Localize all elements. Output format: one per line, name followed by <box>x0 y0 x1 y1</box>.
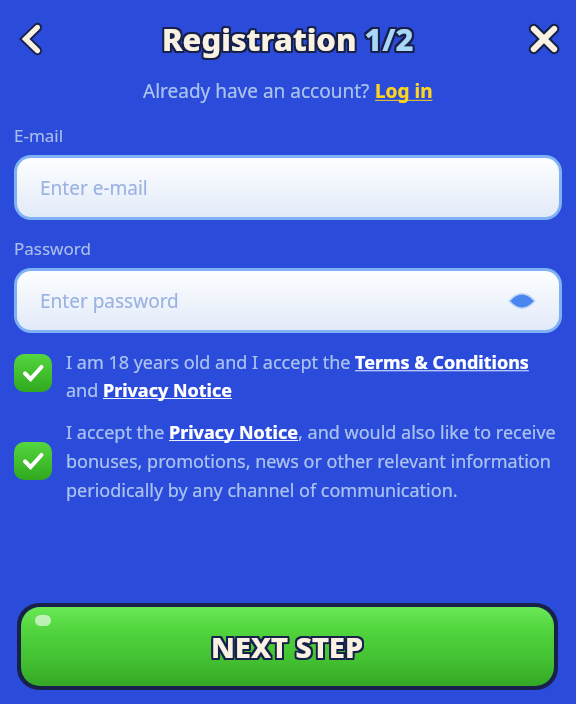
button[interactable]: Checkbox, checked <box>14 442 52 480</box>
staticText: NEXT STEP <box>211 625 364 664</box>
staticText: NEXT STEP <box>210 625 363 664</box>
staticText: Registration 1/2 <box>162 18 414 60</box>
staticText: NEXT STEP <box>209 627 362 666</box>
button[interactable]: Enter password <box>17 271 559 330</box>
staticText: Enter password <box>40 288 179 314</box>
staticText: Registration 1/2 <box>162 20 414 62</box>
staticText: Registration 1/2 <box>160 19 412 61</box>
staticText: Registration 1/2 <box>163 16 415 58</box>
staticText: NEXT STEP <box>209 628 362 667</box>
staticText: Log in <box>375 78 433 104</box>
staticText: NEXT STEP <box>213 626 366 665</box>
staticText: NEXT STEP <box>213 628 366 667</box>
staticText: NEXT STEP <box>213 627 366 666</box>
staticText: NEXT STEP <box>212 629 365 668</box>
staticText: Registration 1/2 <box>160 17 412 59</box>
button[interactable]: Close <box>516 11 572 67</box>
button[interactable]: Enter e-mail <box>17 158 559 217</box>
button[interactable]: Checkbox, checked <box>14 350 562 402</box>
staticText: NEXT STEP <box>209 626 362 665</box>
staticText: Registration 1/2 <box>164 19 416 61</box>
staticText: Registration 1/2 <box>162 16 414 58</box>
staticText: Registration 1/2 <box>163 20 415 62</box>
staticText: NEXT STEP <box>211 629 364 668</box>
staticText: E-mail <box>14 124 64 147</box>
staticText: Registration 1/2 <box>164 17 416 59</box>
staticText: NEXT STEP <box>209 629 362 668</box>
button[interactable]: Checkbox, checked <box>14 354 52 392</box>
staticText: Enter e-mail <box>40 175 148 201</box>
staticText: NEXT STEP <box>213 625 366 664</box>
staticText: I am 18 years old and I accept the Terms… <box>66 350 562 402</box>
staticText: Registration 1/2 <box>160 16 412 58</box>
staticText: Registration 1/2 <box>161 16 413 58</box>
staticText: Registration 1/2 <box>161 20 413 62</box>
staticText: NEXT STEP <box>212 625 365 664</box>
button[interactable]: Already have an account? <box>143 78 433 104</box>
staticText: NEXT STEP <box>210 629 363 668</box>
button[interactable]: Checkbox, checked <box>14 420 562 502</box>
button[interactable]: NEXT STEP <box>21 607 554 686</box>
staticText: Registration 1/2 <box>160 18 412 60</box>
button[interactable]: Show password <box>507 286 537 316</box>
staticText: NEXT STEP <box>209 625 362 664</box>
staticText: NEXT STEP <box>211 627 364 666</box>
staticText: I accept the Privacy Notice, and would a… <box>66 420 562 502</box>
staticText: NEXT STEP <box>213 629 366 668</box>
staticText: Registration 1/2 <box>164 16 416 58</box>
staticText: Registration 1/2 <box>164 18 416 60</box>
staticText: Already have an account? <box>143 78 375 104</box>
staticText: Registration 1/2 <box>160 20 412 62</box>
staticText: Password <box>14 237 91 260</box>
staticText: Registration 1/2 <box>164 20 416 62</box>
button[interactable]: Back <box>4 11 60 67</box>
